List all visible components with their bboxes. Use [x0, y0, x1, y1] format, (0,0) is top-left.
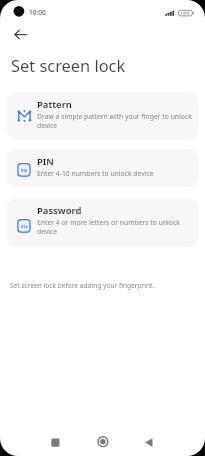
- staticText: device: [37, 227, 58, 236]
- staticText: Draw a simple pattern with your finger t…: [37, 112, 192, 121]
- button[interactable]: Pattern: [7, 92, 198, 140]
- staticText: Enter 4 or more letters or numbers to un…: [37, 218, 180, 227]
- staticText: 816: [21, 168, 28, 173]
- button[interactable]: [10, 26, 32, 43]
- staticText: Pattern: [37, 98, 72, 111]
- button[interactable]: 816: [7, 149, 198, 187]
- button[interactable]: #1a: [7, 198, 198, 247]
- staticText: 10:00: [29, 8, 46, 17]
- button[interactable]: [45, 432, 65, 452]
- staticText: device: [37, 121, 58, 130]
- button[interactable]: [93, 432, 113, 452]
- staticText: Set screen lock: [11, 54, 126, 76]
- button[interactable]: [139, 432, 159, 452]
- staticText: PIN: [37, 155, 54, 168]
- staticText: Enter 4-16 numbers to unlock device: [37, 169, 154, 178]
- staticText: #1a: [21, 224, 28, 229]
- staticText: Set screen lock before adding your finge…: [10, 281, 155, 290]
- staticText: Password: [37, 204, 82, 217]
